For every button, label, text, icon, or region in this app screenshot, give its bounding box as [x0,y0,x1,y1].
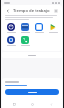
button[interactable]: Recent [7,100,21,108]
button[interactable] [5,23,17,33]
button[interactable] [19,36,31,46]
button[interactable] [5,36,17,46]
button[interactable] [5,89,59,95]
button[interactable]: Home [25,100,39,108]
button[interactable] [19,23,31,33]
button[interactable] [33,23,45,33]
button[interactable]: Settings [53,8,59,14]
staticText: Tiempo de trabajo [13,8,53,14]
button[interactable] [47,23,59,33]
button[interactable]: Back [5,8,11,14]
button[interactable] [2,52,62,58]
